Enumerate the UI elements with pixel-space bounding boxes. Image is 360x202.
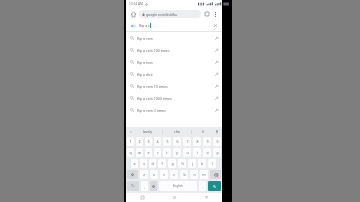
button[interactable]: 0 [213,137,221,146]
button[interactable]: i [193,148,201,157]
staticText: 0 [216,139,219,144]
button[interactable]: f [158,159,166,168]
button[interactable]: li [192,127,214,136]
button[interactable]: d [149,159,156,168]
staticText: t [166,150,168,155]
staticText: g [171,161,174,166]
button[interactable]: Voice input [214,127,220,136]
staticText: x [153,172,155,177]
staticText: English [173,184,183,188]
staticText: r [157,150,159,155]
button[interactable]: 1 [127,137,134,146]
button[interactable]: a [131,159,138,168]
staticText: q [129,150,132,155]
button[interactable]: r [154,148,161,157]
staticText: flip a coin 1000 times [137,96,215,101]
button[interactable]: Home [158,193,190,202]
staticText: a [133,161,136,166]
button[interactable]: google.com/#sbfbu [142,10,198,18]
button[interactable]: x [150,170,158,179]
button[interactable]: n [190,170,198,179]
staticText: c [163,172,165,177]
staticText: cha [174,129,180,134]
button[interactable]: 7 [183,137,191,146]
button[interactable]: Recent apps [126,193,158,202]
button[interactable]: q [127,148,134,157]
button[interactable]: Clear [212,22,219,29]
staticText: n [193,172,196,177]
button[interactable]: !?= [127,181,139,191]
button[interactable]: 9 [203,137,211,146]
button[interactable]: flip a dice [126,68,222,80]
button[interactable]: 3 [145,137,152,146]
staticText: b [183,172,186,177]
button[interactable]: c [160,170,168,179]
button[interactable]: w [136,148,143,157]
button[interactable]: Home [129,10,137,18]
button[interactable]: flip a coin 3 times [126,104,222,116]
button[interactable]: u [183,148,191,157]
staticText: d [151,161,154,166]
button[interactable]: s [140,159,147,168]
button[interactable]: t [163,148,171,157]
button[interactable]: 6 [173,137,181,146]
staticText: e [147,150,150,155]
button[interactable]: cha [163,127,191,136]
button[interactable]: . [199,181,206,191]
staticText: 4 [156,139,159,144]
button[interactable]: v [170,170,178,179]
staticText: . [202,184,203,189]
button[interactable]: Backspace [210,170,221,179]
staticText: 5 [166,139,169,144]
button[interactable]: Search [208,181,221,191]
button[interactable]: lovely [134,127,162,136]
staticText: 2 [138,139,141,144]
button[interactable]: l [208,159,216,168]
staticText: 8 [196,139,199,144]
button[interactable]: e [145,148,152,157]
button[interactable]: Space [159,181,197,191]
staticText: 6 [176,139,179,144]
button[interactable]: Settings [150,181,157,191]
button[interactable]: flip a coin 1000 times [126,92,222,104]
button[interactable]: 5 [163,137,171,146]
button[interactable]: flip a toss [126,56,222,68]
button[interactable]: flip a coin [126,32,222,44]
button[interactable]: h [178,159,186,168]
button[interactable]: 8 [193,137,201,146]
button[interactable]: , [141,181,148,191]
staticText: flip a coin 10 times [137,84,215,89]
staticText: flip a dice [137,72,215,77]
staticText: > [130,130,132,134]
staticText: i [197,150,198,155]
button[interactable]: More options [211,10,219,18]
staticText: google.com/#sbfbu [146,12,178,17]
button[interactable]: Back [129,22,136,29]
staticText: 7 [186,139,189,144]
button[interactable]: m [200,170,208,179]
button[interactable]: y [173,148,181,157]
button[interactable]: g [168,159,176,168]
staticText: h [181,161,184,166]
button[interactable]: z [140,170,148,179]
button[interactable]: p [213,148,221,157]
button[interactable]: Shift [127,170,138,179]
button[interactable]: Back [190,193,222,202]
button[interactable]: j [188,159,196,168]
staticText: p [216,150,219,155]
button[interactable]: o [203,148,211,157]
button[interactable]: k [198,159,206,168]
staticText: y [176,150,178,155]
staticText: !?= [131,184,135,188]
button[interactable]: flip a coin 10 times [126,80,222,92]
button[interactable]: 2 [136,137,143,146]
staticText: 9 [206,139,209,144]
button[interactable]: > [128,127,134,136]
button[interactable]: Tabs [203,10,211,18]
staticText: f [161,161,163,166]
button[interactable]: b [180,170,188,179]
staticText: o [206,150,209,155]
button[interactable]: flip a coin 100 times [126,44,222,56]
button[interactable]: 4 [154,137,161,146]
staticText: li [202,129,204,134]
